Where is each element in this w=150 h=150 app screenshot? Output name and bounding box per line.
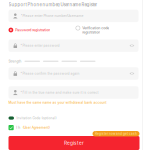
staticText: (User Agreement) <box>23 126 50 130</box>
staticText: Invitation Code (optional) <box>16 116 56 120</box>
staticText: Register <box>64 140 84 146</box>
staticText: *Please confirm the password again <box>21 72 80 75</box>
staticText: Strength <box>8 59 21 63</box>
staticText: *Please enter Phone number/Username <box>21 14 84 18</box>
button[interactable]: Register now and get cash <box>92 131 139 136</box>
staticText: *Please enter password <box>21 44 60 48</box>
button[interactable]: Register <box>8 136 139 150</box>
staticText: I h <box>16 126 20 130</box>
staticText: Register now and get cash <box>95 132 137 135</box>
button[interactable]: Verification code registration <box>75 26 113 34</box>
staticText: Password registration <box>15 28 50 32</box>
button[interactable]: I h <box>8 125 138 130</box>
button[interactable]: Password registration <box>8 28 50 32</box>
staticText: Verification code registration <box>82 26 109 34</box>
staticText: Must have the same name as your withdraw… <box>8 101 106 105</box>
staticText: *Fill in the true name and make sure it … <box>21 91 99 94</box>
staticText: Support Phone number/Username Register <box>8 2 97 7</box>
